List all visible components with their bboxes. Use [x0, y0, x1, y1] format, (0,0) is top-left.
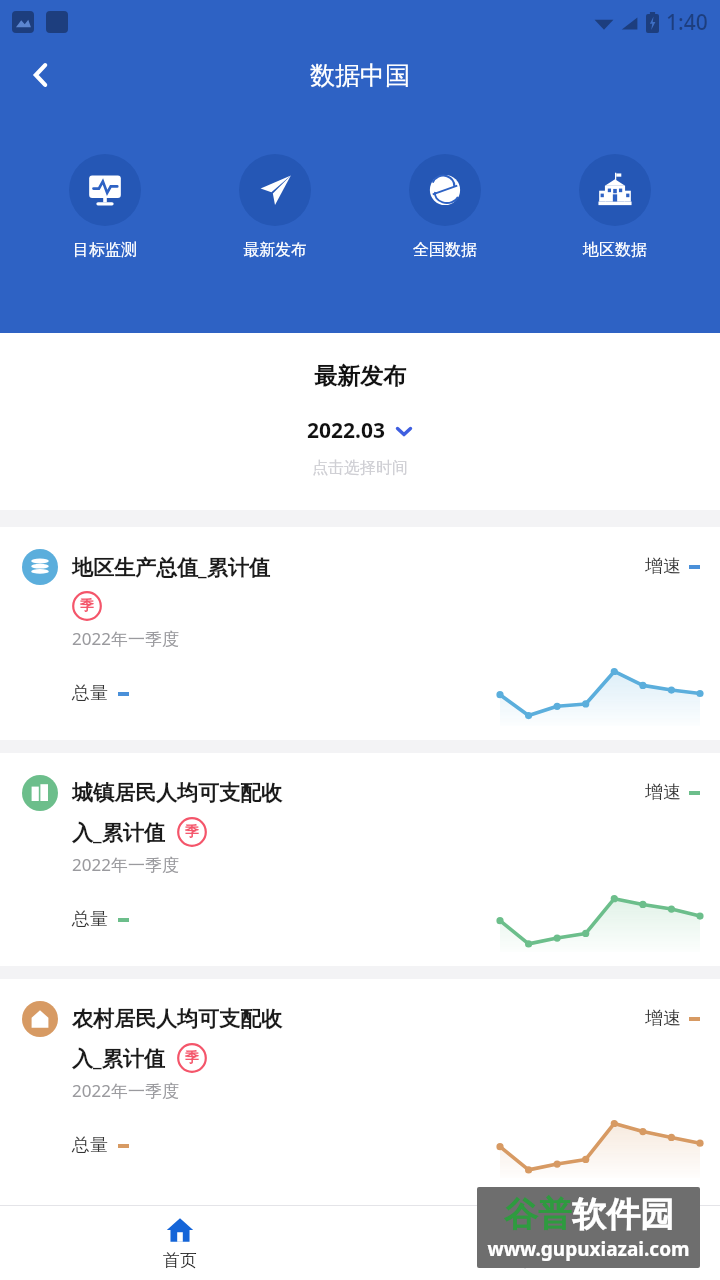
staticText: 入_累计值 [72, 818, 165, 847]
button[interactable]: 消息 [360, 1206, 720, 1280]
button[interactable]: 首页 [0, 1206, 360, 1280]
staticText: 首页 [163, 1250, 197, 1271]
button[interactable]: 最新发布 [190, 154, 360, 260]
staticText: 增速 [645, 555, 681, 578]
staticText: 入_累计值 [72, 1044, 165, 1073]
staticText: 软件园 [572, 1193, 674, 1236]
button[interactable]: 城镇居民人均可支配收 [0, 753, 720, 966]
staticText: 2022年一季度 [72, 853, 179, 876]
staticText: 数据中国 [310, 60, 410, 91]
staticText: 总量 [72, 908, 108, 931]
staticText: 2022年一季度 [72, 1079, 179, 1102]
staticText: 全国数据 [413, 240, 477, 260]
staticText: 2022.03 [307, 416, 385, 445]
staticText: 城镇居民人均可支配收 [72, 780, 282, 806]
staticText: 地区生产总值_累计值 [72, 553, 270, 582]
staticText: 农村居民人均可支配收 [72, 1006, 282, 1032]
button[interactable]: 2022.03 [307, 416, 413, 445]
staticText: 增速 [645, 1007, 681, 1030]
staticText: 季 [185, 1049, 199, 1067]
button[interactable]: 地区生产总值_累计值 [0, 527, 720, 740]
staticText: 2022年一季度 [72, 627, 179, 650]
staticText: 1:40 [666, 8, 708, 37]
staticText: 目标监测 [73, 240, 137, 260]
staticText: 季 [185, 823, 199, 841]
staticText: 总量 [72, 1134, 108, 1157]
button[interactable]: 农村居民人均可支配收 [0, 979, 720, 1192]
staticText: 点击选择时间 [312, 458, 408, 478]
button[interactable]: 目标监测 [20, 154, 190, 260]
button[interactable]: 地区数据 [530, 154, 700, 260]
staticText: 增速 [645, 781, 681, 804]
staticText: 最新发布 [243, 240, 307, 260]
staticText: 最新发布 [314, 362, 406, 391]
staticText: 谷普 [504, 1193, 572, 1236]
button[interactable]: Back [14, 48, 68, 102]
staticText: www.gupuxiazai.com [487, 1236, 690, 1262]
staticText: 地区数据 [583, 240, 647, 260]
staticText: 消息 [523, 1250, 557, 1271]
button[interactable]: 全国数据 [360, 154, 530, 260]
staticText: 季 [80, 597, 94, 615]
staticText: 总量 [72, 682, 108, 705]
